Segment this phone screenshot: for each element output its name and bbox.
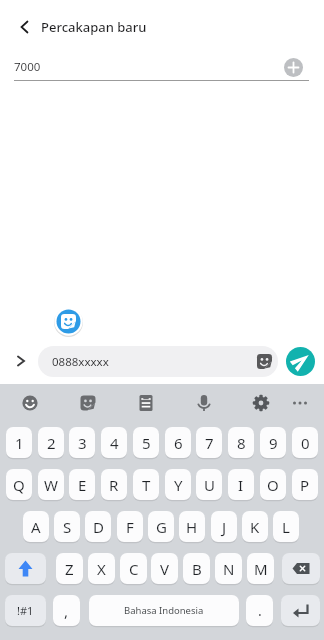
staticText: H bbox=[186, 517, 198, 537]
button[interactable]: J bbox=[211, 511, 237, 542]
button[interactable]: Q bbox=[6, 469, 32, 500]
staticText: U bbox=[204, 475, 215, 495]
button[interactable] bbox=[5, 553, 46, 584]
staticText: 7000 bbox=[14, 59, 41, 75]
button[interactable] bbox=[286, 389, 314, 417]
staticText: M bbox=[254, 559, 268, 579]
button[interactable] bbox=[247, 389, 275, 417]
button[interactable]: L bbox=[273, 511, 299, 542]
button[interactable] bbox=[74, 389, 102, 417]
staticText: 0 bbox=[301, 433, 310, 453]
staticText: R bbox=[109, 475, 119, 495]
staticText: Y bbox=[174, 475, 183, 495]
button[interactable]: H bbox=[179, 511, 205, 542]
staticText: 9 bbox=[269, 433, 278, 453]
button[interactable]: E bbox=[69, 469, 95, 500]
staticText: G bbox=[156, 517, 167, 537]
staticText: 8 bbox=[237, 433, 246, 453]
staticText: T bbox=[142, 475, 151, 495]
button[interactable] bbox=[286, 347, 315, 376]
staticText: Q bbox=[13, 475, 25, 495]
staticText: 5 bbox=[142, 433, 151, 453]
staticText: , bbox=[64, 601, 69, 621]
button[interactable] bbox=[281, 595, 320, 626]
button[interactable]: B bbox=[183, 553, 210, 584]
button[interactable]: R bbox=[101, 469, 127, 500]
button[interactable] bbox=[14, 344, 27, 378]
button[interactable] bbox=[132, 389, 160, 417]
button[interactable]: K bbox=[242, 511, 268, 542]
button[interactable]: O bbox=[260, 469, 286, 500]
button[interactable]: C bbox=[120, 553, 147, 584]
button[interactable]: . bbox=[246, 595, 273, 626]
staticText: 0888xxxxx bbox=[52, 354, 109, 370]
staticText: N bbox=[223, 559, 235, 579]
button[interactable]: U bbox=[196, 469, 222, 500]
staticText: 2 bbox=[47, 433, 56, 453]
button[interactable]: P bbox=[292, 469, 318, 500]
staticText: 4 bbox=[110, 433, 119, 453]
button[interactable]: Y bbox=[165, 469, 191, 500]
button[interactable]: A bbox=[23, 511, 49, 542]
button[interactable]: I bbox=[228, 469, 254, 500]
button[interactable] bbox=[190, 389, 218, 417]
staticText: 1 bbox=[15, 433, 24, 453]
staticText: 6 bbox=[174, 433, 183, 453]
staticText: C bbox=[129, 559, 139, 579]
button[interactable]: S bbox=[54, 511, 80, 542]
staticText: !#1 bbox=[17, 603, 34, 618]
staticText: E bbox=[78, 475, 87, 495]
staticText: A bbox=[31, 517, 41, 537]
button[interactable]: 0888xxxxx bbox=[38, 346, 278, 377]
button[interactable] bbox=[54, 307, 83, 336]
button[interactable]: Z bbox=[56, 553, 83, 584]
button[interactable]: F bbox=[117, 511, 143, 542]
button[interactable]: Bahasa Indonesia bbox=[89, 595, 239, 626]
staticText: Percakapan baru bbox=[41, 18, 147, 36]
staticText: S bbox=[63, 517, 72, 537]
button[interactable]: G bbox=[148, 511, 174, 542]
button[interactable]: D bbox=[85, 511, 111, 542]
button[interactable]: , bbox=[53, 595, 80, 626]
button[interactable]: 9 bbox=[260, 427, 286, 458]
button[interactable]: 4 bbox=[101, 427, 127, 458]
button[interactable] bbox=[284, 58, 303, 77]
button[interactable]: W bbox=[38, 469, 64, 500]
button[interactable]: 7 bbox=[196, 427, 222, 458]
staticText: . bbox=[258, 601, 262, 620]
button[interactable] bbox=[13, 15, 37, 39]
button[interactable]: N bbox=[215, 553, 242, 584]
staticText: Bahasa Indonesia bbox=[124, 604, 204, 617]
staticText: J bbox=[222, 517, 227, 537]
button[interactable]: T bbox=[133, 469, 159, 500]
button[interactable] bbox=[16, 389, 44, 417]
staticText: B bbox=[192, 559, 202, 579]
staticText: L bbox=[282, 517, 290, 537]
button[interactable]: 8 bbox=[228, 427, 254, 458]
button[interactable]: X bbox=[88, 553, 115, 584]
button[interactable]: M bbox=[247, 553, 274, 584]
button[interactable]: 0 bbox=[292, 427, 318, 458]
staticText: I bbox=[238, 475, 244, 495]
staticText: Z bbox=[65, 559, 74, 579]
staticText: X bbox=[97, 559, 106, 579]
button[interactable]: 6 bbox=[165, 427, 191, 458]
button[interactable]: 2 bbox=[38, 427, 64, 458]
button[interactable]: 5 bbox=[133, 427, 159, 458]
button[interactable]: 3 bbox=[69, 427, 95, 458]
button[interactable]: V bbox=[151, 553, 178, 584]
staticText: V bbox=[160, 559, 170, 579]
button[interactable]: 1 bbox=[6, 427, 32, 458]
button[interactable] bbox=[282, 553, 320, 584]
staticText: 7 bbox=[205, 433, 214, 453]
staticText: O bbox=[267, 475, 279, 495]
staticText: D bbox=[93, 517, 104, 537]
staticText: K bbox=[250, 517, 260, 537]
button[interactable]: !#1 bbox=[5, 595, 46, 626]
staticText: W bbox=[44, 475, 58, 495]
staticText: 3 bbox=[78, 433, 87, 453]
staticText: P bbox=[300, 475, 310, 495]
staticText: F bbox=[126, 517, 134, 537]
